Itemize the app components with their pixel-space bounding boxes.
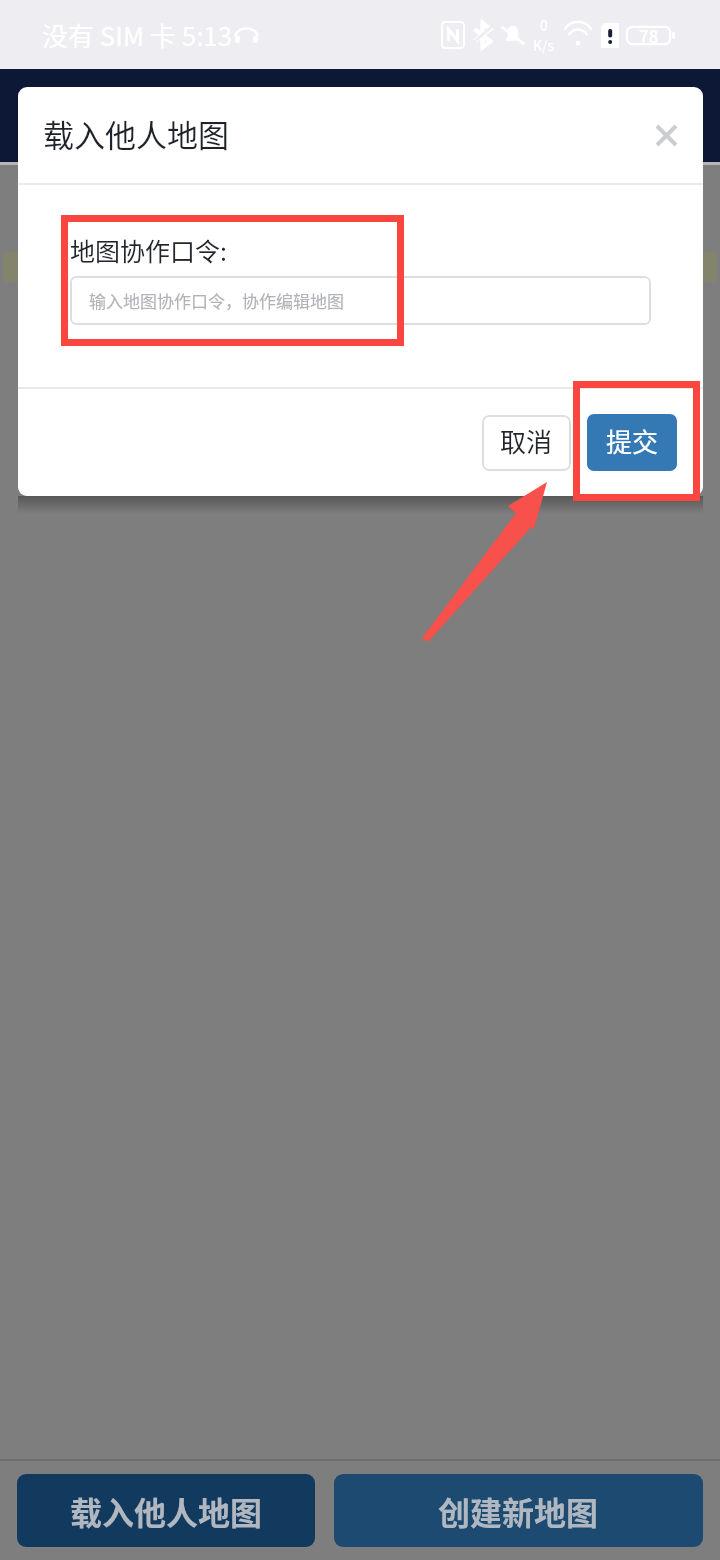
staticText: 载入他人地图 xyxy=(70,1488,263,1534)
staticText: 取消 xyxy=(500,422,553,460)
button[interactable]: Close xyxy=(645,114,687,156)
button[interactable]: 创建新地图 xyxy=(334,1474,703,1547)
staticText: 没有 SIM 卡 5:13 xyxy=(42,16,233,54)
staticText: K/s xyxy=(533,35,555,55)
staticText: 提交 xyxy=(606,422,659,460)
button[interactable]: 输入地图协作口令，协作编辑地图 xyxy=(70,276,651,325)
staticText: 0 xyxy=(540,15,548,35)
staticText: 创建新地图 xyxy=(438,1488,599,1534)
staticText: 载入他人地图 xyxy=(43,111,229,156)
staticText: 输入地图协作口令，协作编辑地图 xyxy=(89,288,344,313)
button[interactable]: 载入他人地图 xyxy=(17,1474,315,1547)
button[interactable]: 取消 xyxy=(482,415,571,471)
staticText: 地图协作口令: xyxy=(70,232,227,268)
staticText: 78 xyxy=(639,23,659,48)
button[interactable]: 提交 xyxy=(587,414,677,471)
